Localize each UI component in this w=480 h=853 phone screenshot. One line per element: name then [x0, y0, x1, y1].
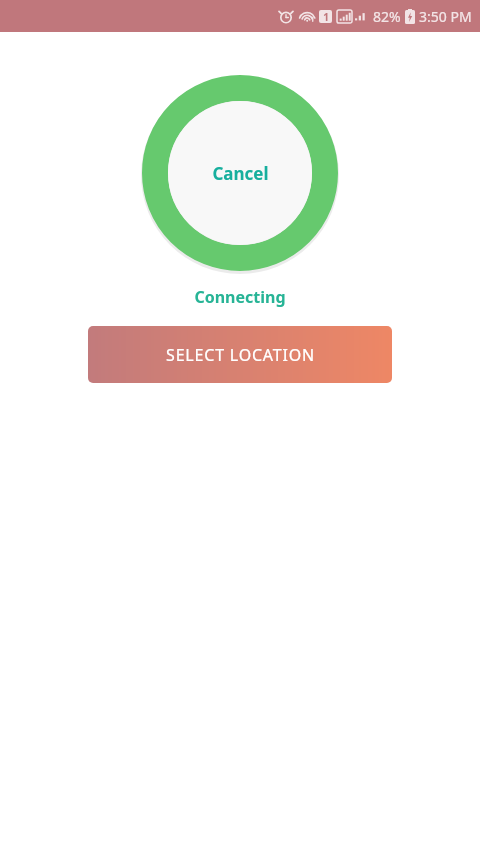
staticText: SELECT LOCATION [166, 344, 315, 366]
staticText: Cancel [212, 162, 269, 185]
staticText: 1 [323, 10, 329, 23]
staticText: 3:50 PM [419, 7, 472, 26]
button[interactable]: Cancel [141, 74, 339, 272]
staticText: Connecting [0, 286, 480, 308]
button[interactable]: SELECT LOCATION [88, 326, 392, 383]
staticText: 82% [373, 7, 401, 26]
